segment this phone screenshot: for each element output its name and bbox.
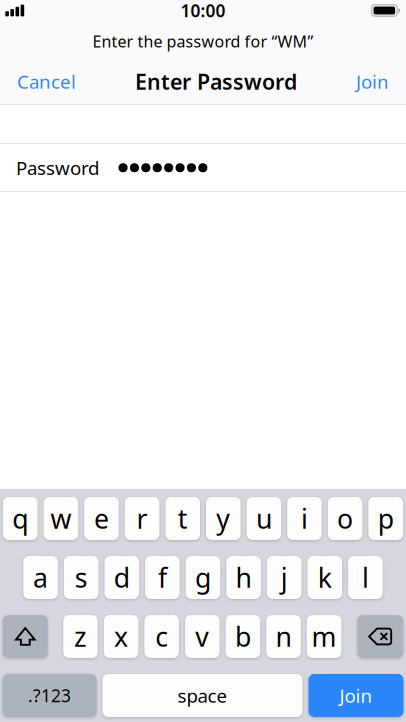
button[interactable]: b	[226, 615, 260, 658]
staticText: .?123	[28, 684, 71, 707]
button[interactable]: v	[185, 615, 220, 658]
button[interactable]: m	[307, 615, 341, 658]
button[interactable]: z	[63, 615, 98, 658]
button[interactable]: Join	[354, 60, 391, 103]
button[interactable]: w	[44, 497, 78, 540]
button[interactable]: Shift	[3, 615, 48, 658]
staticText: n	[275, 619, 291, 654]
button[interactable]: q	[3, 497, 38, 540]
button[interactable]: space	[102, 674, 302, 717]
button[interactable]: e	[84, 497, 119, 540]
staticText: a	[33, 560, 48, 595]
button[interactable]: s	[64, 556, 98, 599]
button[interactable]: h	[226, 556, 261, 599]
button[interactable]: l	[348, 556, 383, 599]
button[interactable]: Cancel	[15, 60, 78, 103]
button[interactable]: Delete	[357, 615, 403, 658]
staticText: x	[114, 619, 128, 654]
staticText: Join	[356, 69, 389, 94]
staticText: i	[301, 501, 308, 536]
staticText: r	[137, 501, 148, 536]
button[interactable]: p	[368, 497, 403, 540]
button[interactable]: t	[165, 497, 200, 540]
staticText: j	[281, 560, 288, 595]
button[interactable]: Join	[308, 674, 403, 717]
staticText: f	[158, 560, 167, 595]
staticText: o	[337, 501, 353, 536]
staticText: space	[177, 683, 227, 708]
staticText: Join	[339, 683, 372, 708]
staticText: e	[94, 501, 109, 536]
button[interactable]: y	[206, 497, 241, 540]
button[interactable]: a	[23, 556, 58, 599]
button[interactable]: u	[247, 497, 281, 540]
button[interactable]: g	[186, 556, 220, 599]
button[interactable]: r	[125, 497, 159, 540]
button[interactable]: d	[104, 556, 139, 599]
button[interactable]: f	[145, 556, 180, 599]
staticText: w	[50, 501, 71, 536]
button[interactable]: k	[307, 556, 342, 599]
button[interactable]: x	[104, 615, 138, 658]
staticText: g	[195, 560, 211, 595]
staticText: v	[195, 619, 209, 654]
staticText: Enter the password for “WM”	[92, 31, 313, 52]
staticText: l	[362, 560, 369, 595]
staticText: b	[235, 619, 251, 654]
staticText: s	[75, 560, 88, 595]
staticText: u	[256, 501, 272, 536]
staticText: Enter Password	[135, 67, 297, 96]
button[interactable]: o	[328, 497, 362, 540]
button[interactable]: c	[144, 615, 179, 658]
staticText: d	[114, 560, 130, 595]
staticText: c	[155, 619, 168, 654]
staticText: y	[216, 501, 230, 536]
staticText: z	[74, 619, 87, 654]
button[interactable]: .?123	[2, 674, 96, 717]
button[interactable]: i	[287, 497, 322, 540]
button[interactable]: n	[266, 615, 301, 658]
staticText: q	[12, 501, 28, 536]
staticText: t	[178, 501, 188, 536]
staticText: 10:00	[180, 0, 225, 22]
staticText: k	[318, 560, 332, 595]
button[interactable]: j	[267, 556, 301, 599]
staticText: p	[378, 501, 394, 536]
staticText: m	[312, 619, 337, 654]
staticText: Cancel	[17, 69, 76, 94]
staticText: Password	[16, 155, 99, 180]
staticText: h	[236, 560, 252, 595]
